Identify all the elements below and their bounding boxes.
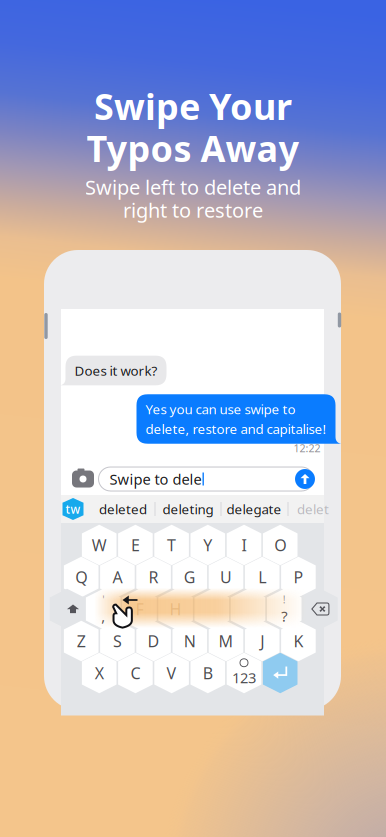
button[interactable]: S: [100, 621, 135, 661]
staticText: tw: [65, 501, 80, 517]
staticText: H: [170, 598, 182, 620]
staticText: ': [102, 592, 104, 606]
staticText: A: [112, 566, 122, 588]
staticText: N: [184, 630, 196, 652]
staticText: D: [148, 630, 160, 652]
button[interactable]: H: [158, 589, 193, 629]
button[interactable]: D: [136, 621, 171, 661]
staticText: O: [274, 534, 286, 556]
staticText: L: [258, 566, 266, 588]
staticText: Swipe Your: [94, 82, 292, 130]
button[interactable]: Delete: [303, 589, 338, 629]
button[interactable]: Y: [190, 525, 225, 565]
staticText: delet: [297, 500, 329, 518]
button[interactable]: N: [172, 621, 207, 661]
staticText: [210, 598, 214, 620]
button[interactable]: L: [245, 557, 279, 597]
staticText: X: [95, 662, 104, 684]
button[interactable]: [194, 589, 229, 629]
staticText: M: [218, 630, 233, 652]
button[interactable]: Z: [64, 621, 98, 661]
staticText: 12:22: [293, 441, 320, 455]
staticText: ,: [101, 606, 105, 626]
button[interactable]: B: [190, 653, 225, 693]
button[interactable]: C: [118, 653, 153, 693]
button[interactable]: M: [209, 621, 243, 661]
staticText: Does it work?: [74, 362, 157, 379]
staticText: K: [293, 630, 303, 652]
staticText: G: [184, 566, 196, 588]
button[interactable]: [231, 589, 265, 629]
staticText: U: [220, 566, 232, 588]
button[interactable]: O: [263, 525, 297, 565]
button[interactable]: Numbers and emoji: [227, 653, 261, 693]
button[interactable]: J: [245, 621, 279, 661]
staticText: [246, 598, 250, 620]
staticText: B: [203, 662, 213, 684]
staticText: delegate: [226, 500, 281, 518]
staticText: P: [293, 566, 303, 588]
staticText: delete, restore and capitalise!: [145, 420, 326, 438]
button[interactable]: deleting: [152, 494, 223, 524]
staticText: Z: [77, 630, 86, 652]
button[interactable]: Return: [263, 653, 297, 693]
button[interactable]: T: [154, 525, 189, 565]
staticText: C: [130, 662, 140, 684]
staticText: Q: [75, 566, 87, 588]
button[interactable]: R: [136, 557, 171, 597]
staticText: Yes you can use swipe to: [145, 400, 295, 418]
button[interactable]: Camera: [71, 468, 95, 490]
staticText: 123: [232, 668, 256, 687]
button[interactable]: ': [86, 589, 120, 629]
button[interactable]: K: [281, 621, 316, 661]
button[interactable]: E: [118, 525, 153, 565]
staticText: deleting: [162, 500, 213, 518]
button[interactable]: A: [100, 557, 135, 597]
button[interactable]: F: [122, 589, 157, 629]
button[interactable]: !: [267, 589, 301, 629]
staticText: V: [167, 662, 177, 684]
staticText: Swipe left to delete and: [85, 174, 301, 200]
staticText: Swipe to dele: [109, 469, 201, 489]
button[interactable]: Q: [64, 557, 98, 597]
button[interactable]: Shift: [50, 589, 84, 629]
staticText: right to restore: [123, 197, 263, 223]
button[interactable]: G: [172, 557, 207, 597]
button[interactable]: W: [82, 525, 116, 565]
staticText: F: [135, 598, 143, 620]
staticText: ?: [281, 606, 287, 626]
staticText: I: [241, 534, 246, 556]
staticText: R: [149, 566, 159, 588]
staticText: deleted: [99, 500, 147, 518]
staticText: !: [283, 592, 286, 606]
button[interactable]: P: [281, 557, 316, 597]
button[interactable]: deleted: [89, 494, 157, 524]
staticText: T: [167, 534, 176, 556]
staticText: Typos Away: [86, 124, 299, 172]
staticText: W: [92, 534, 107, 556]
button[interactable]: delegate: [216, 494, 291, 524]
staticText: Y: [203, 534, 212, 556]
staticText: J: [260, 630, 264, 652]
button[interactable]: X: [82, 653, 116, 693]
button[interactable]: V: [154, 653, 189, 693]
staticText: S: [113, 630, 122, 652]
button[interactable]: I: [227, 525, 261, 565]
button[interactable]: Send: [295, 469, 315, 489]
staticText: E: [131, 534, 140, 556]
button[interactable]: U: [209, 557, 243, 597]
